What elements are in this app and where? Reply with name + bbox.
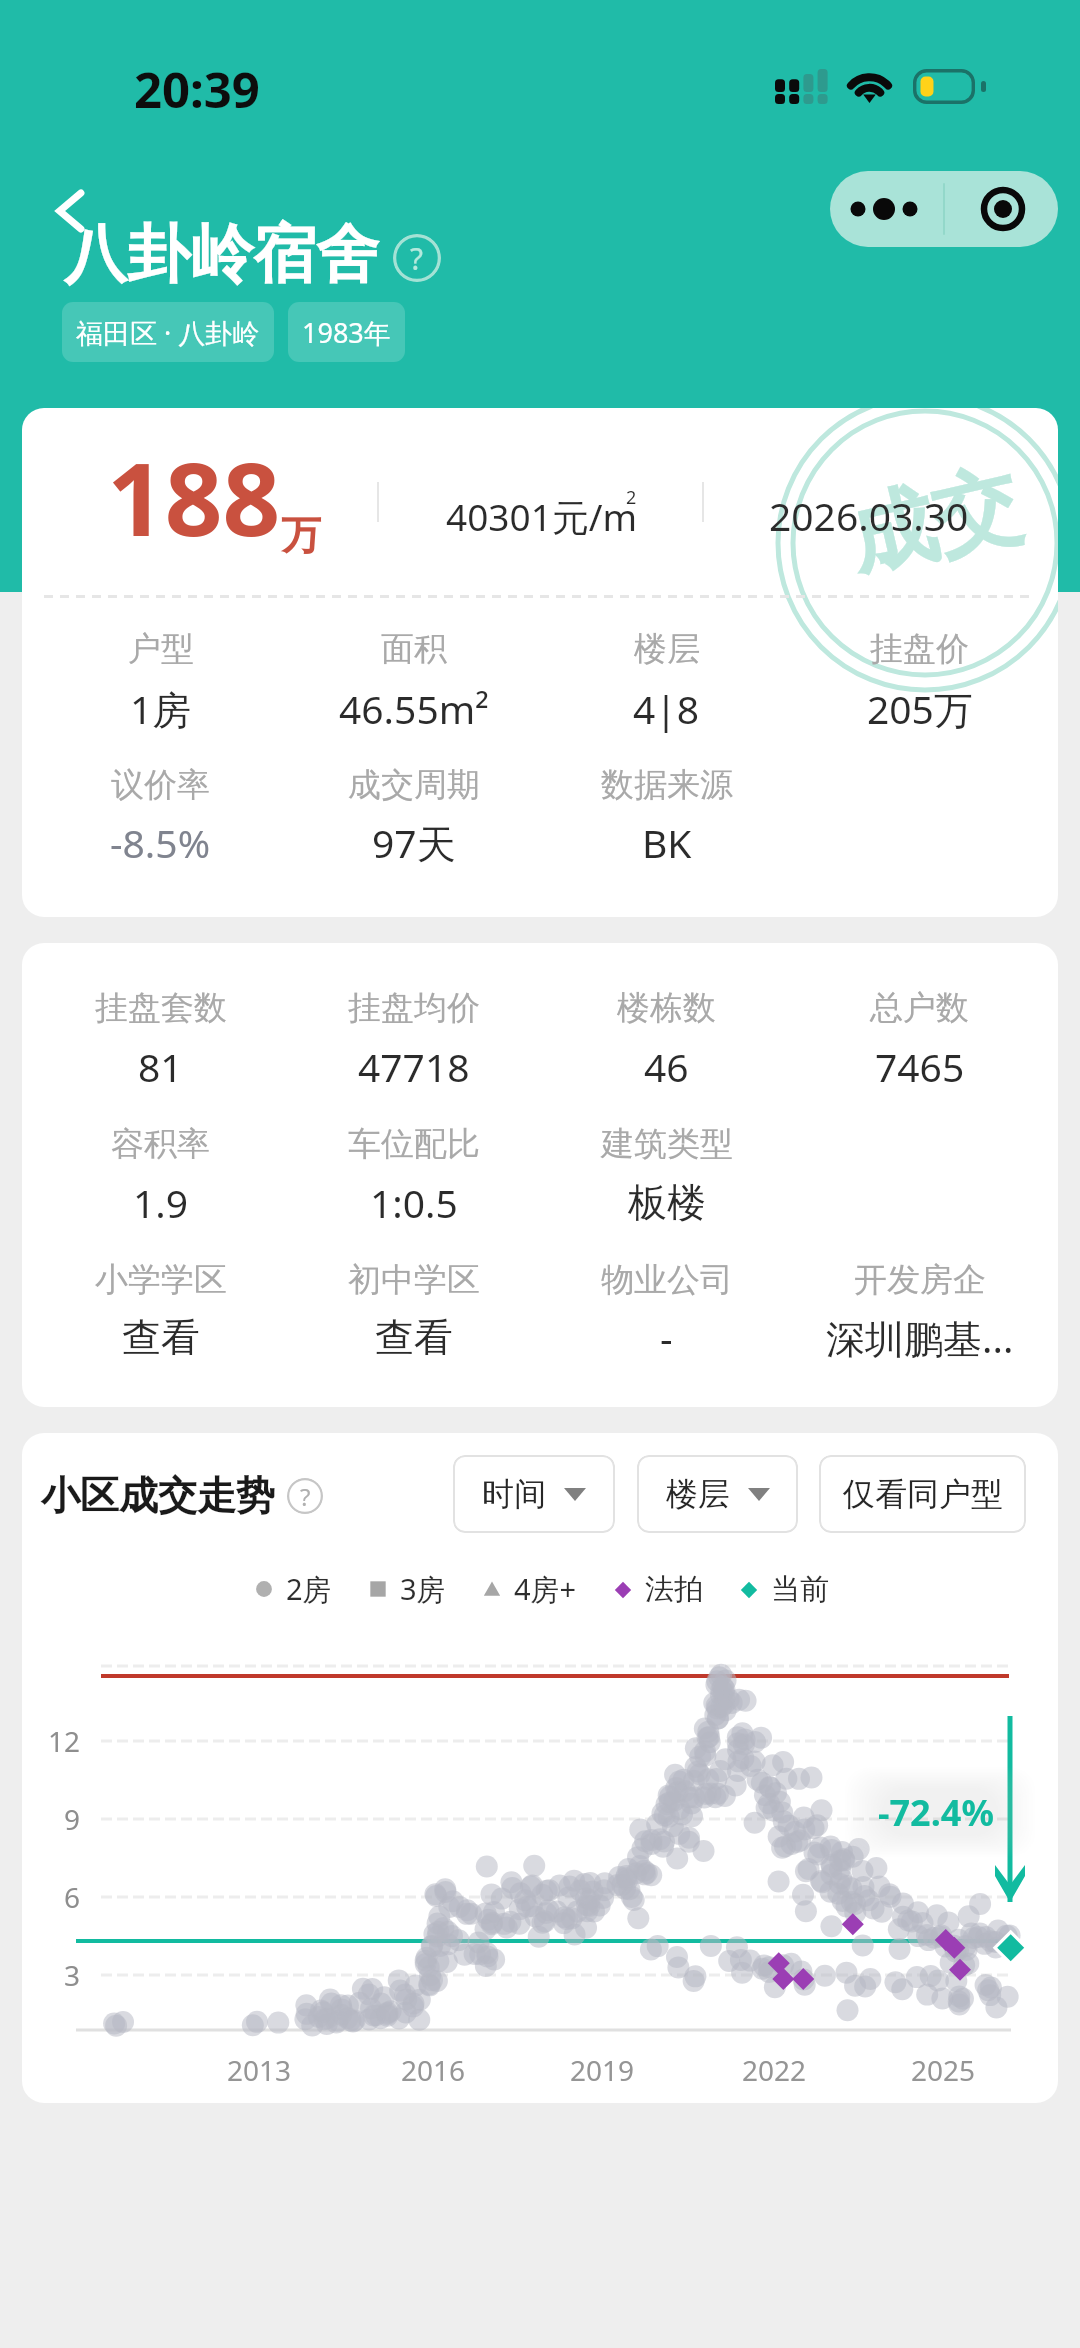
staticText: 6 [64,1878,81,1916]
staticText: 1:0.5 [370,1176,458,1229]
staticText: 97天 [372,816,456,869]
staticText: 2016 [401,2051,466,2089]
button[interactable]: Help [287,1478,323,1514]
staticText: 188 [107,428,281,566]
button[interactable]: 仅看同户型 [819,1455,1026,1533]
staticText: 小学学区 [95,1259,227,1301]
button[interactable]: Help [393,234,441,282]
staticText: 查看 [122,1313,200,1362]
staticText: 12 [48,1722,81,1760]
staticText: 议价率 [111,764,210,806]
staticText: 万 [281,510,321,560]
staticText: 板楼 [628,1178,706,1227]
staticText: 开发房企 [854,1259,986,1301]
staticText: 福田区 · 八卦岭 [76,314,260,351]
staticText: 2013 [227,2051,292,2089]
staticText: 挂盘套数 [95,987,227,1029]
staticText: ? [300,1480,311,1513]
staticText: 4房+ [514,1569,577,1609]
staticText: 成交 [838,450,1030,594]
staticText: 查看 [375,1313,453,1362]
staticText: 46 [644,1040,689,1093]
staticText: 容积率 [111,1123,210,1165]
staticText: 总户数 [870,987,969,1029]
staticText: ? [410,238,424,279]
staticText: 20:39 [134,56,260,123]
staticText: 2025 [911,2051,976,2089]
button[interactable]: More options and close [830,171,1058,247]
staticText: 挂盘均价 [348,987,480,1029]
staticText: 户型 [128,628,194,670]
staticText: BK [642,816,692,869]
staticText: - [660,1311,673,1364]
staticText: 建筑类型 [601,1123,733,1165]
staticText: 数据来源 [601,764,733,806]
staticText: 仅看同户型 [843,1474,1003,1514]
staticText: 深圳鹏基... [826,1311,1014,1364]
button[interactable]: 福田区 · 八卦岭 [62,302,274,362]
staticText: 1房 [130,682,192,735]
staticText: 当前 [771,1571,829,1608]
staticText: -8.5% [110,816,211,869]
staticText: 2026.03.30 [769,489,969,542]
staticText: 车位配比 [348,1123,480,1165]
staticText: 小区成交走势 [41,1471,275,1520]
staticText: 1983年 [302,314,391,351]
staticText: -72.4% [878,1788,994,1836]
staticText: 2022 [742,2051,807,2089]
staticText: 3 [64,1956,81,1994]
staticText: 40301元/m [446,491,638,542]
staticText: 2房 [286,1569,332,1609]
staticText: 面积 [381,628,447,670]
staticText: 八卦岭宿舍 [64,215,379,294]
staticText: 成交周期 [348,764,480,806]
staticText: 物业公司 [601,1259,733,1301]
staticText: 楼层 [666,1474,730,1514]
staticText: 81 [138,1040,183,1093]
staticText: 法拍 [645,1571,703,1608]
staticText: 楼栋数 [617,987,716,1029]
staticText: 初中学区 [348,1259,480,1301]
button[interactable]: Back [57,190,83,232]
staticText: 47718 [358,1040,470,1093]
staticText: 2019 [570,2051,635,2089]
staticText: 9 [64,1800,81,1838]
staticText: 46.55m² [339,682,489,735]
staticText: 4|8 [633,682,700,735]
button[interactable]: 楼层 [637,1455,798,1533]
staticText: 1.9 [133,1176,189,1229]
staticText: 楼层 [634,628,700,670]
staticText: 7465 [875,1040,965,1093]
staticText: 2 [626,485,637,510]
staticText: 挂盘价 [870,628,969,670]
staticText: 3房 [400,1569,446,1609]
staticText: 205万 [867,682,973,735]
button[interactable]: 1983年 [288,302,405,362]
staticText: 时间 [482,1474,546,1514]
button[interactable]: 时间 [453,1455,615,1533]
